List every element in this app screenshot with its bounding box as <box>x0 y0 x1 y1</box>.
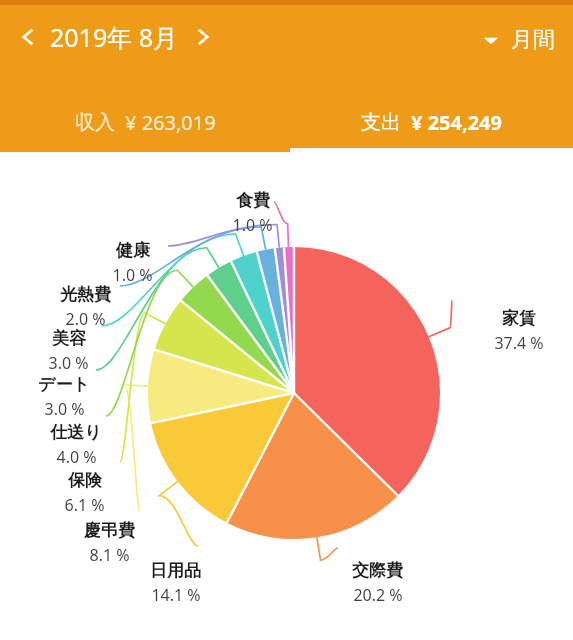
staticText: 支出 <box>361 110 401 135</box>
staticText: 収入 <box>75 110 115 135</box>
staticText: 慶弔費 <box>84 520 135 541</box>
staticText: 14.1 % <box>151 584 201 606</box>
staticText: デート <box>38 374 90 395</box>
staticText: 美容 <box>52 328 86 349</box>
staticText: 2.0 % <box>65 308 106 330</box>
button[interactable]: 支出 <box>290 92 573 152</box>
button[interactable]: 家賃 <box>0 0 573 640</box>
staticText: 日用品 <box>150 560 201 581</box>
button[interactable]: 月間 <box>479 22 559 58</box>
staticText: 月間 <box>511 26 555 54</box>
button[interactable]: Previous month <box>16 25 40 49</box>
button[interactable]: Previous month <box>10 16 221 58</box>
staticText: 6.1 % <box>64 494 105 516</box>
staticText: 健康 <box>116 240 150 261</box>
staticText: 4.0 % <box>56 446 97 468</box>
staticText: 20.2 % <box>353 584 403 606</box>
staticText: 食費 <box>236 190 270 211</box>
staticText: ¥ 254,249 <box>411 109 502 136</box>
staticText: 1.0 % <box>112 264 153 286</box>
staticText: 家賃 <box>502 308 536 329</box>
staticText: 2019年 8月 <box>50 20 179 54</box>
button[interactable]: 収入 <box>0 92 290 152</box>
staticText: 3.0 % <box>48 352 89 374</box>
staticText: 1.0 % <box>232 214 273 236</box>
staticText: 37.4 % <box>494 332 544 354</box>
staticText: 保険 <box>68 470 102 491</box>
button[interactable]: Next month <box>191 25 215 49</box>
staticText: 仕送り <box>50 422 102 443</box>
staticText: 3.0 % <box>44 398 85 420</box>
staticText: 交際費 <box>352 560 403 581</box>
staticText: 光熱費 <box>60 284 111 305</box>
staticText: 8.1 % <box>89 544 130 566</box>
staticText: ¥ 263,019 <box>125 109 216 136</box>
